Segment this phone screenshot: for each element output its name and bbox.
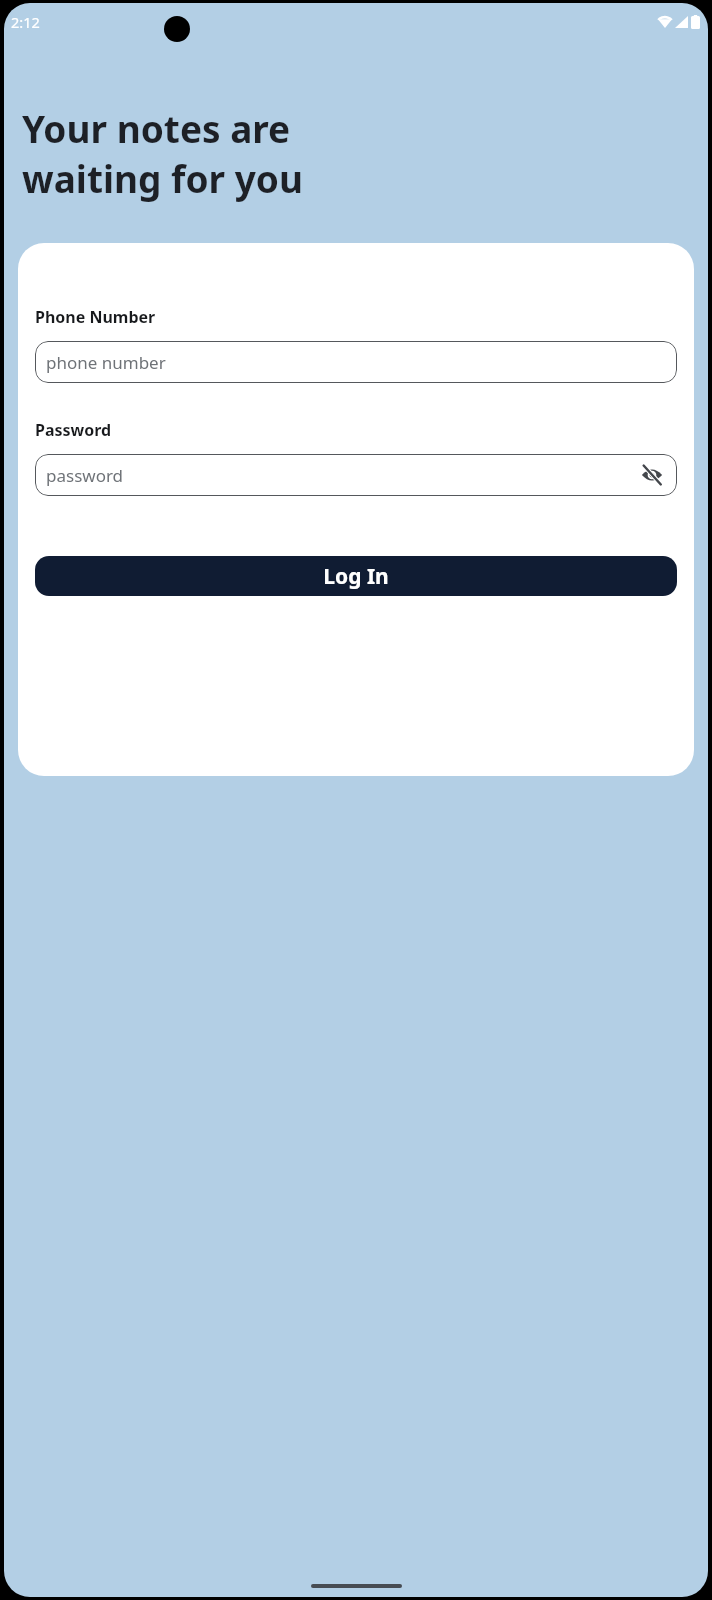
staticText: Password <box>35 419 112 441</box>
staticText: waiting for you <box>22 153 303 203</box>
button[interactable]: phone number <box>35 341 677 383</box>
button[interactable]: password <box>35 454 677 496</box>
staticText: 2:12 <box>11 12 40 32</box>
staticText: Log In <box>323 562 389 591</box>
staticText: phone number <box>46 351 166 374</box>
button[interactable]: Hide password <box>636 459 668 491</box>
staticText: Phone Number <box>35 306 156 328</box>
staticText: password <box>46 464 124 487</box>
staticText: Your notes are <box>22 103 291 153</box>
button[interactable]: Log In <box>35 556 677 596</box>
